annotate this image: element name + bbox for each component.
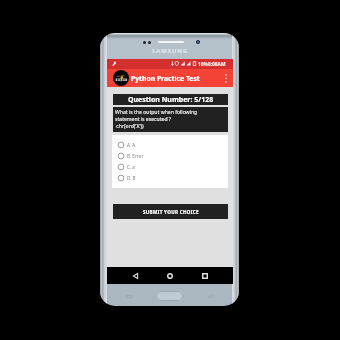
button[interactable]: Recent apps [194, 267, 216, 284]
button[interactable]: Home [159, 267, 181, 284]
staticText: SAMSUNG [152, 47, 189, 55]
staticText: Question Number: 5/128 [128, 95, 214, 105]
staticText: C. a [127, 164, 135, 170]
button[interactable]: Back [124, 267, 146, 284]
button[interactable]: D. B [118, 172, 228, 183]
staticText: chr(ord('X')) [115, 123, 144, 130]
staticText: Python Practice Test [131, 74, 200, 83]
button[interactable]: SUBMIT YOUR CHOICE [113, 204, 228, 219]
staticText: A. A [127, 142, 136, 148]
staticText: 8:08AM [208, 61, 226, 68]
staticText: 16% [198, 61, 208, 68]
staticText: What is the output when following statem… [115, 109, 198, 123]
button[interactable]: A. A [118, 139, 228, 150]
button[interactable]: More options [221, 73, 231, 83]
button[interactable]: C. a [118, 161, 228, 172]
staticText: SUBMIT YOUR CHOICE [143, 209, 199, 215]
button[interactable]: B. Error [118, 150, 228, 161]
staticText: B. Error [127, 153, 144, 159]
staticText: D. B [127, 175, 136, 181]
